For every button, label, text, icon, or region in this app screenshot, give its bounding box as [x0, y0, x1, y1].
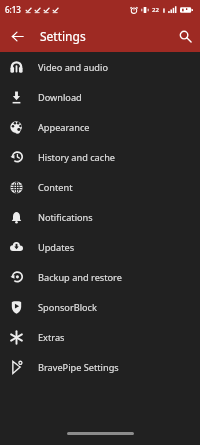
- staticText: 22: [152, 6, 159, 14]
- staticText: History and cache: [38, 151, 116, 164]
- button[interactable]: Download: [0, 82, 200, 112]
- staticText: Content: [38, 181, 73, 194]
- button[interactable]: SponsorBlock: [0, 292, 200, 322]
- button[interactable]: Search: [173, 24, 197, 48]
- button[interactable]: BravePipe Settings: [0, 352, 200, 382]
- staticText: Updates: [38, 241, 75, 254]
- button[interactable]: Backup and restore: [0, 262, 200, 292]
- staticText: Video and audio: [38, 61, 108, 74]
- staticText: Download: [38, 91, 82, 104]
- button[interactable]: Back: [5, 24, 29, 48]
- staticText: Appearance: [38, 121, 90, 134]
- staticText: Settings: [40, 28, 86, 44]
- button[interactable]: Extras: [0, 322, 200, 352]
- staticText: BravePipe Settings: [38, 361, 119, 374]
- button[interactable]: Appearance: [0, 112, 200, 142]
- button[interactable]: Updates: [0, 232, 200, 262]
- staticText: Extras: [38, 331, 65, 344]
- button[interactable]: Video and audio: [0, 52, 200, 82]
- staticText: SponsorBlock: [38, 301, 97, 314]
- button[interactable]: Notifications: [0, 202, 200, 232]
- staticText: Notifications: [38, 211, 93, 224]
- staticText: Backup and restore: [38, 271, 122, 284]
- staticText: 6:13: [5, 4, 21, 15]
- button[interactable]: History and cache: [0, 142, 200, 172]
- button[interactable]: Content: [0, 172, 200, 202]
